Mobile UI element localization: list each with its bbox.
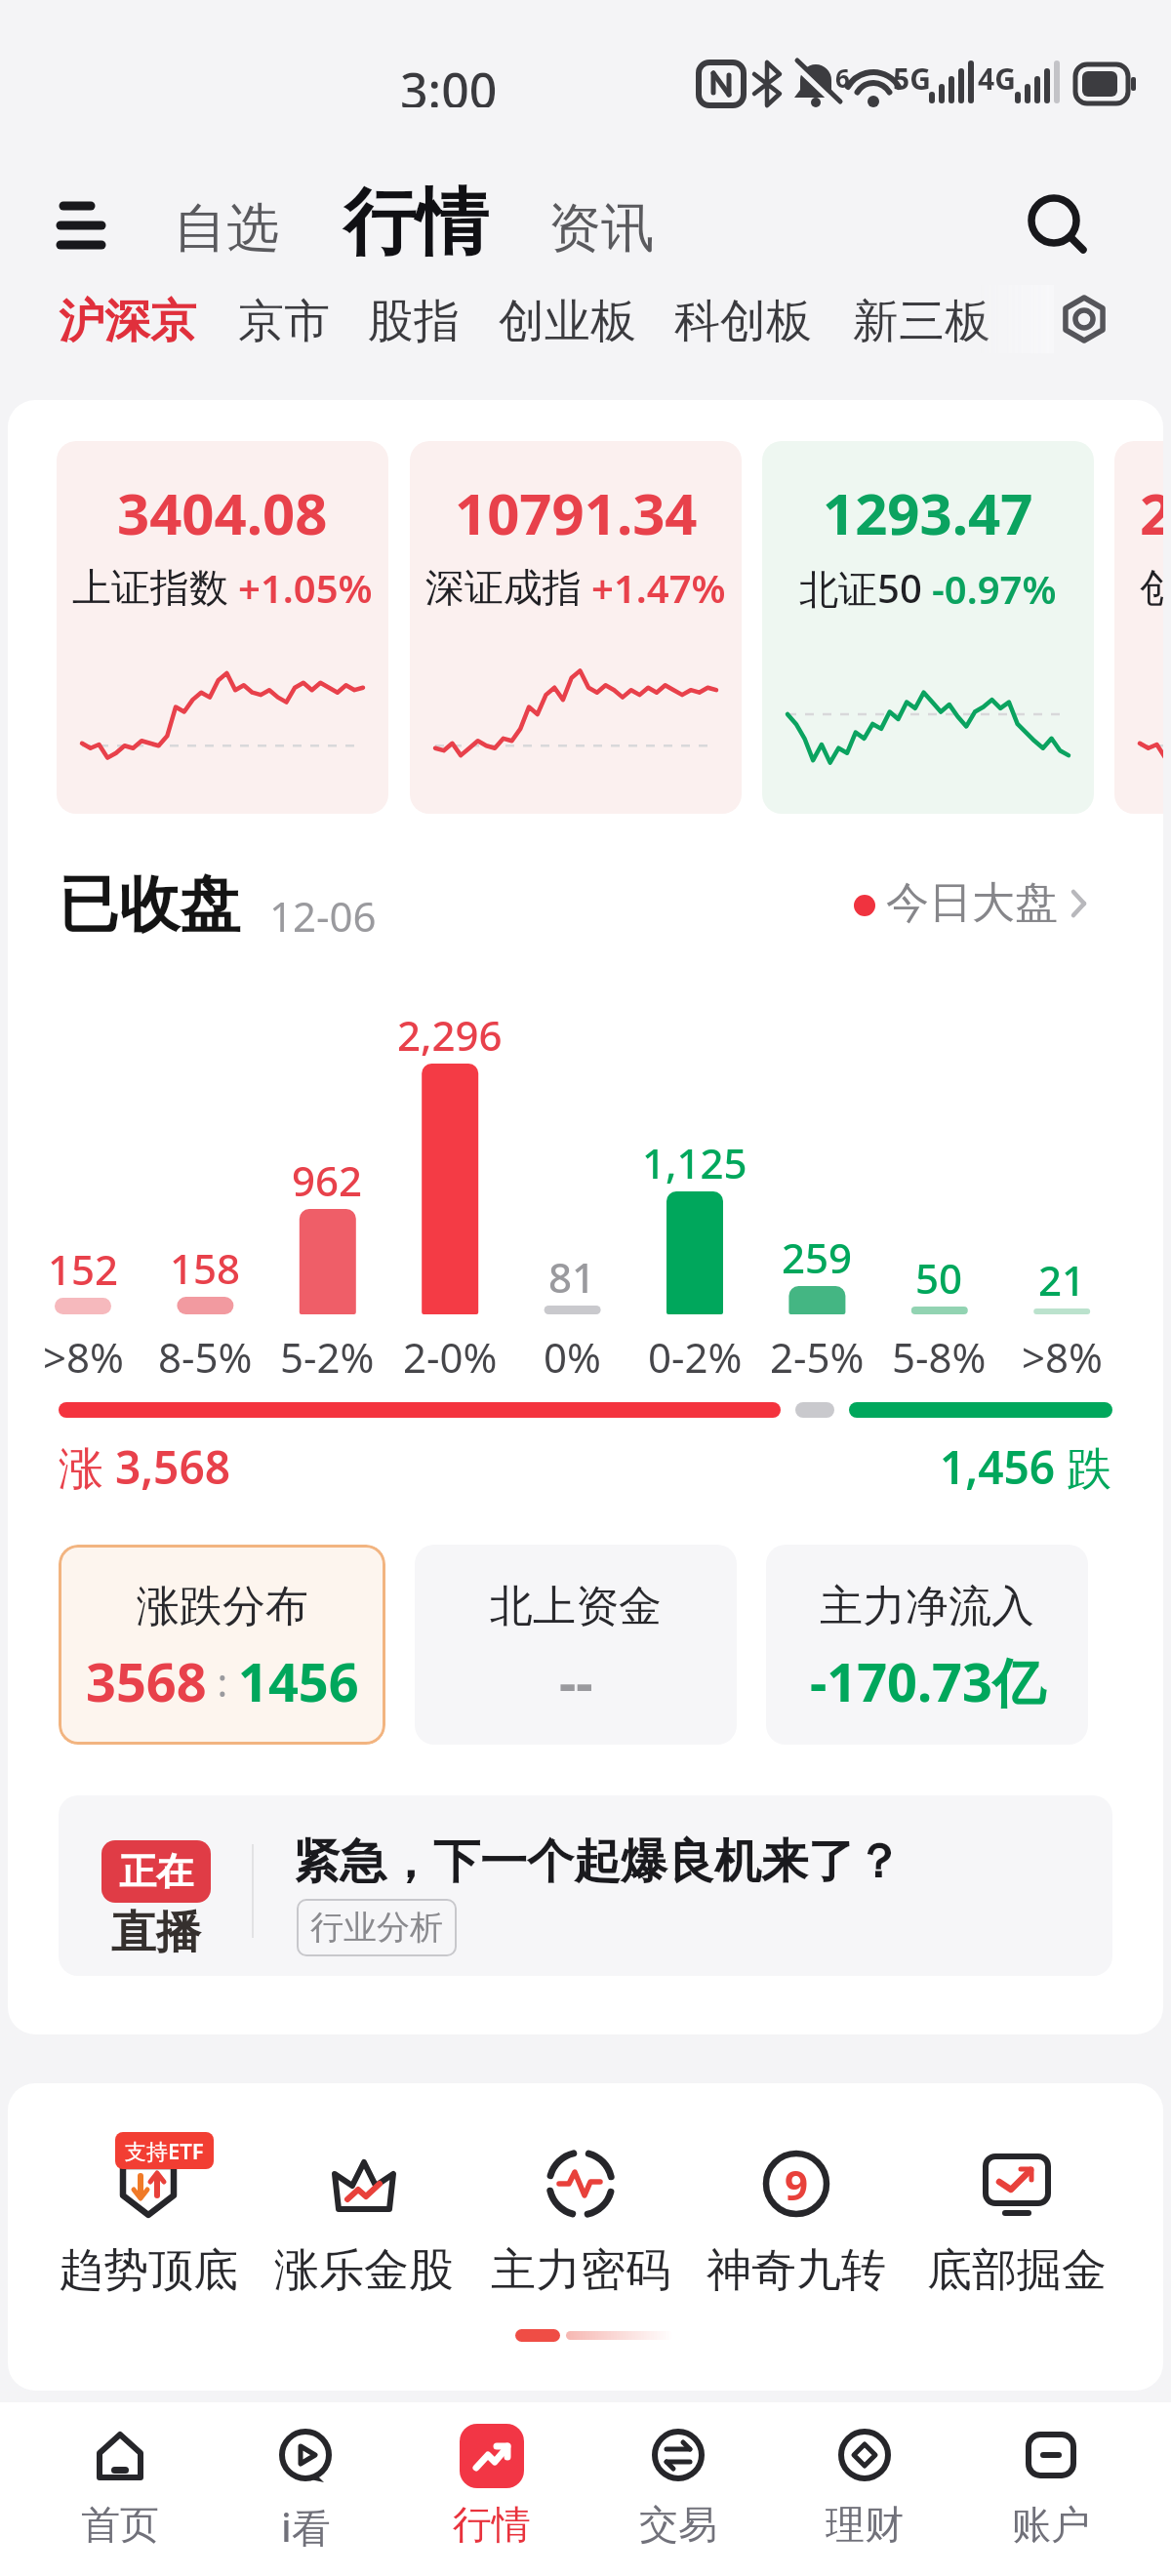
staticText: 2-0%: [403, 1329, 498, 1385]
staticText: 底部掘金: [927, 2242, 1107, 2299]
button[interactable]: 主力净流入: [766, 1545, 1088, 1745]
staticText: 行情: [453, 2500, 531, 2549]
staticText: 涨跌分布: [137, 1580, 308, 1633]
staticText: -170.73亿: [810, 1645, 1045, 1717]
staticText: 主力净流入: [820, 1580, 1034, 1633]
button[interactable]: 3404.08: [57, 441, 388, 814]
button[interactable]: 京市: [238, 293, 330, 350]
button[interactable]: 行情: [343, 178, 488, 268]
button[interactable]: 科创板: [674, 293, 812, 350]
staticText: 交易: [639, 2500, 717, 2549]
button[interactable]: [1060, 295, 1109, 343]
staticText: 5G: [893, 59, 931, 99]
button[interactable]: 涨跌分布: [59, 1545, 385, 1745]
staticText: 3568: [86, 1645, 207, 1717]
button[interactable]: 主力密码: [473, 2137, 688, 2371]
staticText: >8%: [1022, 1329, 1103, 1385]
staticText: 8-5%: [158, 1329, 253, 1385]
button[interactable]: 涨乐金股: [257, 2137, 471, 2371]
staticText: 5-8%: [892, 1329, 987, 1385]
staticText: 9: [785, 2156, 809, 2212]
staticText: 21: [1038, 1252, 1086, 1308]
staticText: 10791.34: [455, 474, 698, 551]
button[interactable]: 沪深京: [59, 293, 196, 350]
button[interactable]: 正在: [59, 1795, 1112, 1976]
staticText: 账户: [1012, 2500, 1090, 2549]
staticText: 1,125: [642, 1135, 747, 1190]
button[interactable]: 北上资金: [415, 1545, 737, 1745]
staticText: 2291.93: [1140, 474, 1163, 551]
staticText: 2-5%: [770, 1329, 865, 1385]
staticText: 5-2%: [280, 1329, 375, 1385]
staticText: 主力密码: [491, 2242, 670, 2299]
staticText: 1293.47: [823, 474, 1033, 551]
staticText: 2,296: [397, 1007, 503, 1063]
staticText: 北证50: [799, 561, 922, 615]
staticText: 6: [835, 60, 850, 95]
staticText: 1456: [238, 1645, 359, 1717]
staticText: 0-2%: [648, 1329, 743, 1385]
staticText: 1,456 跌: [940, 1436, 1112, 1498]
staticText: 158: [170, 1240, 241, 1296]
button[interactable]: 交易: [585, 2402, 771, 2576]
staticText: 今日大盘: [886, 876, 1058, 930]
button[interactable]: 10791.34: [410, 441, 742, 814]
button[interactable]: i看: [213, 2402, 398, 2576]
button[interactable]: 首页: [27, 2402, 213, 2576]
button[interactable]: 股指: [368, 293, 460, 350]
staticText: 创业板指: [1140, 563, 1163, 612]
button[interactable]: 账户: [957, 2402, 1144, 2576]
staticText: 神奇九转: [707, 2242, 886, 2299]
staticText: 首页: [81, 2500, 159, 2549]
staticText: 259: [782, 1229, 853, 1285]
button[interactable]: 行情: [398, 2402, 585, 2576]
staticText: 12-06: [269, 888, 377, 944]
staticText: 涨 3,568: [59, 1436, 231, 1498]
staticText: 紧急，下一个起爆良机来了？: [293, 1832, 902, 1891]
button[interactable]: 自选: [174, 195, 279, 262]
staticText: 81: [548, 1249, 596, 1305]
staticText: 已收盘: [59, 866, 240, 943]
staticText: +1.47%: [591, 561, 726, 614]
button[interactable]: 1293.47: [762, 441, 1094, 814]
button[interactable]: [59, 201, 105, 250]
button[interactable]: 新三板: [853, 293, 990, 350]
staticText: 趋势顶底: [59, 2242, 238, 2299]
staticText: >8%: [43, 1329, 124, 1385]
button[interactable]: 理财: [771, 2402, 957, 2576]
staticText: 涨乐金股: [274, 2242, 454, 2299]
button[interactable]: 2291.93: [1114, 441, 1163, 814]
button[interactable]: 趋势顶底: [41, 2137, 256, 2371]
button[interactable]: 今日大盘: [853, 876, 1091, 930]
staticText: 4G: [978, 59, 1016, 99]
button[interactable]: 创业板: [499, 293, 636, 350]
staticText: -0.97%: [932, 562, 1057, 615]
staticText: 正在: [119, 1848, 193, 1895]
staticText: 0%: [544, 1329, 601, 1385]
staticText: 支持ETF: [125, 2136, 204, 2165]
staticText: 3:00: [400, 57, 498, 107]
staticText: 50: [915, 1250, 963, 1306]
staticText: 理财: [826, 2500, 904, 2549]
staticText: +1.05%: [238, 561, 373, 614]
staticText: 上证指数: [72, 563, 228, 612]
staticText: 行业分析: [310, 1907, 443, 1949]
staticText: 深证成指: [425, 563, 582, 612]
button[interactable]: [1027, 193, 1089, 256]
button[interactable]: 底部掘金: [909, 2137, 1124, 2371]
staticText: i看: [281, 2500, 331, 2554]
button[interactable]: 9: [689, 2137, 904, 2371]
staticText: :: [207, 1655, 238, 1708]
staticText: 962: [292, 1152, 363, 1208]
staticText: --: [559, 1645, 593, 1717]
staticText: 3404.08: [117, 474, 328, 551]
button[interactable]: 资讯: [548, 195, 654, 262]
staticText: 北上资金: [490, 1580, 662, 1633]
staticText: 直播: [111, 1905, 201, 1961]
staticText: 152: [48, 1241, 119, 1297]
